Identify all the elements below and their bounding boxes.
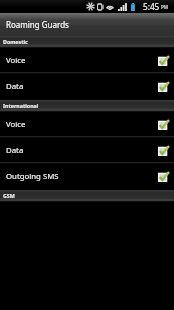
- other: Battery: [131, 3, 135, 11]
- other: Wi-Fi: [106, 3, 114, 11]
- staticText: Roaming Guards: [6, 19, 69, 30]
- staticText: International: [3, 102, 39, 109]
- button[interactable]: Data: [0, 74, 174, 100]
- button[interactable]: Voice: [0, 112, 174, 138]
- staticText: Voice: [6, 119, 26, 130]
- staticText: Data: [6, 81, 24, 92]
- staticText: PM: [161, 4, 169, 10]
- staticText: 5:45: [143, 1, 160, 12]
- other: Signal: [118, 3, 127, 11]
- staticText: Outgoing SMS: [6, 171, 59, 182]
- button[interactable]: Data: [0, 138, 174, 164]
- staticText: Domestic: [3, 38, 28, 45]
- staticText: Data: [6, 145, 24, 156]
- staticText: GSM: [3, 192, 15, 199]
- button[interactable]: Voice: [0, 48, 174, 74]
- staticText: Voice: [6, 55, 26, 66]
- other: Sync: [86, 2, 95, 11]
- other: Vibrate: [97, 3, 104, 11]
- button[interactable]: Outgoing SMS: [0, 164, 174, 190]
